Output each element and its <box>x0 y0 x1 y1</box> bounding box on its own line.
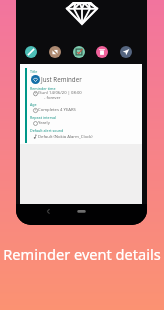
staticText: Repeat interval <box>30 115 57 120</box>
staticText: Reminder time <box>30 86 56 91</box>
staticText: Default alert sound <box>30 128 64 133</box>
button[interactable]: Delete <box>96 46 108 58</box>
button[interactable]: Share <box>120 46 132 58</box>
button[interactable]: Complete <box>73 46 85 58</box>
staticText: Default (Nokia Alarm_Clock) <box>38 134 93 140</box>
button[interactable]: Image <box>49 46 61 58</box>
staticText: (Sun) 14/06/20 | 08:00 <box>38 90 82 96</box>
button[interactable]: Edit <box>25 46 37 58</box>
staticText: - forever <box>44 95 61 101</box>
staticText: Age <box>30 102 37 107</box>
staticText: Completes 4 YEARS <box>38 107 76 113</box>
staticText: Yearly <box>38 120 50 126</box>
staticText: Reminder event details <box>3 244 161 264</box>
staticText: Title <box>30 69 38 74</box>
staticText: Just Reminder <box>41 75 82 83</box>
